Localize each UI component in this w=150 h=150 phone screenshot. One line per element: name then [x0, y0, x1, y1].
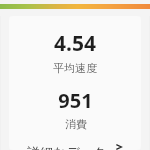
staticText: 消費: [65, 117, 87, 131]
other: 詳細なデータを表示: [114, 144, 124, 150]
button[interactable]: 詳細なデータ: [9, 144, 141, 150]
staticText: 詳細なデータ: [27, 144, 106, 150]
staticText: 平均速度: [53, 61, 97, 75]
staticText: 4.54: [54, 29, 96, 58]
staticText: 951: [58, 87, 93, 114]
